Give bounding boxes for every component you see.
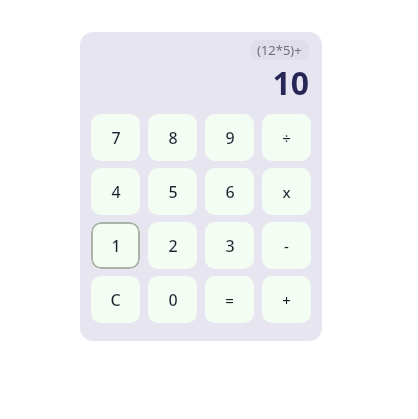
staticText: 0 <box>168 289 178 311</box>
staticText: (12*5)+ <box>257 41 302 59</box>
button[interactable]: 7 <box>91 114 140 161</box>
button[interactable]: 4 <box>91 168 140 215</box>
button[interactable]: 0 <box>148 276 197 323</box>
button[interactable]: 3 <box>205 222 254 269</box>
staticText: 2 <box>168 235 178 257</box>
staticText: x <box>282 182 291 202</box>
button[interactable]: Divide <box>262 114 311 161</box>
staticText: 1 <box>111 235 121 257</box>
staticText: 8 <box>168 127 178 149</box>
staticText: 4 <box>111 181 121 203</box>
staticText: = <box>225 290 234 310</box>
staticText: + <box>282 290 291 310</box>
button[interactable]: 5 <box>148 168 197 215</box>
staticText: C <box>110 289 121 311</box>
button[interactable]: 2 <box>148 222 197 269</box>
staticText: 10 <box>272 61 309 105</box>
staticText: 6 <box>225 181 235 203</box>
button[interactable]: 9 <box>205 114 254 161</box>
button[interactable]: 8 <box>148 114 197 161</box>
staticText: 7 <box>111 127 121 149</box>
staticText: 9 <box>225 127 235 149</box>
button[interactable]: Multiply <box>262 168 311 215</box>
staticText: 5 <box>168 181 178 203</box>
button[interactable]: 6 <box>205 168 254 215</box>
staticText: ÷ <box>282 128 291 148</box>
button[interactable]: Add <box>262 276 311 323</box>
button[interactable]: Subtract <box>262 222 311 269</box>
button[interactable]: C <box>91 276 140 323</box>
staticText: - <box>284 236 289 256</box>
staticText: 3 <box>225 235 235 257</box>
button[interactable]: Equals <box>205 276 254 323</box>
button[interactable]: 1 <box>91 222 140 269</box>
